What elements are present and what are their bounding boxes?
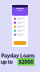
staticText: up to [0, 58, 12, 65]
staticText: Payday Loans [1, 52, 35, 59]
staticText: $2000 [18, 58, 33, 65]
